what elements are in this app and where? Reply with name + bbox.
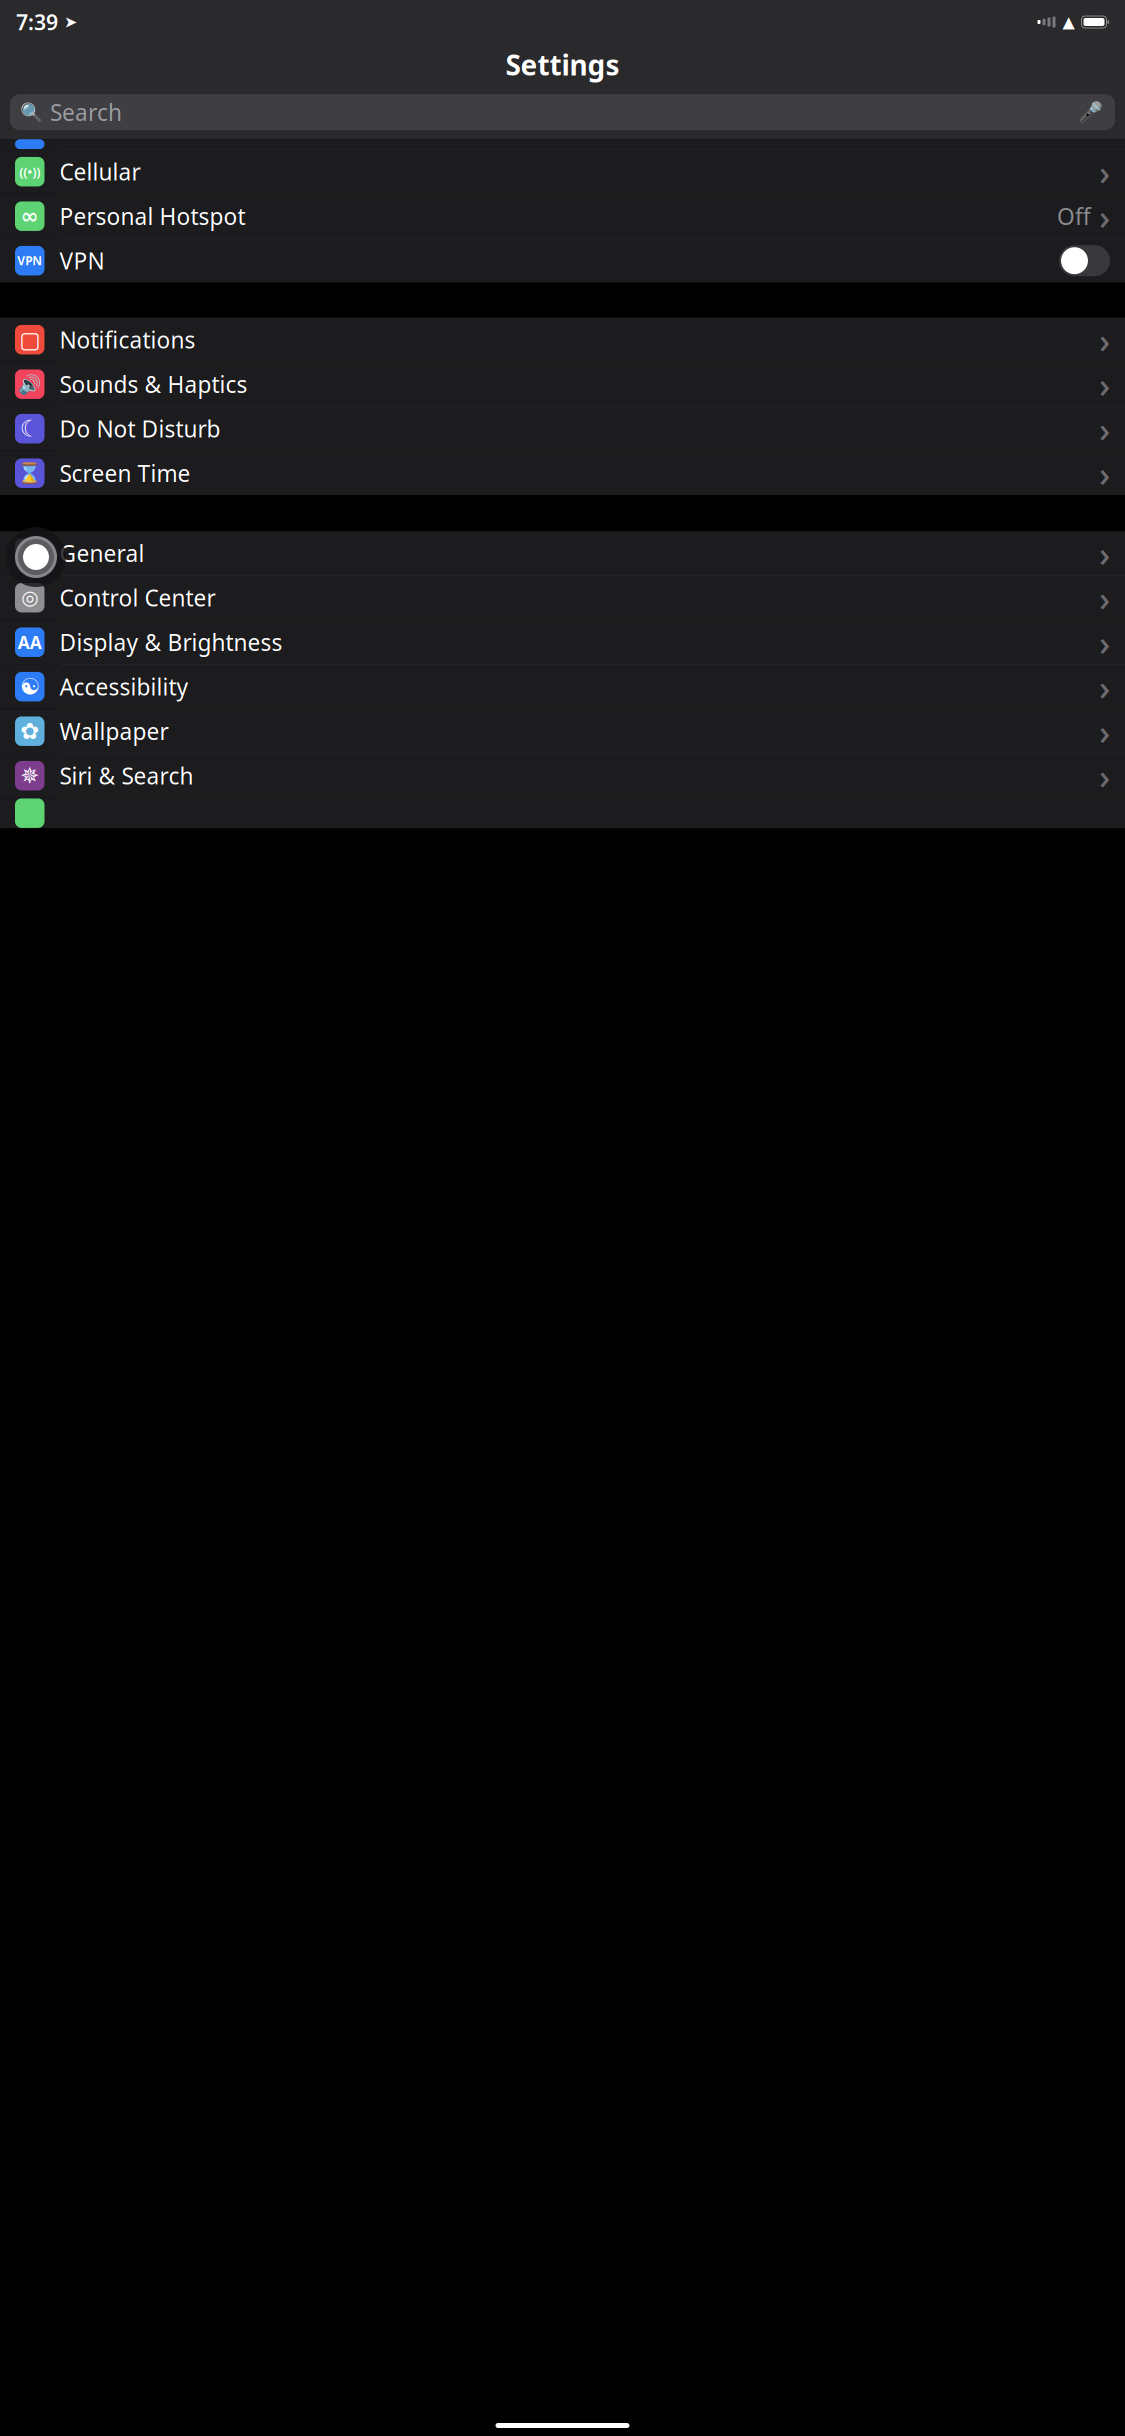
- button[interactable]: 🔍: [10, 94, 1115, 130]
- staticText: Sounds & Haptics: [59, 369, 247, 399]
- staticText: ⚙: [18, 539, 41, 568]
- staticText: ›: [1099, 317, 1110, 363]
- staticText: 🔊: [18, 373, 41, 395]
- button[interactable]: ☯: [0, 665, 1125, 709]
- staticText: Screen Time: [59, 458, 190, 488]
- button[interactable]: ((•)): [0, 150, 1125, 194]
- staticText: ⌛: [17, 462, 42, 485]
- button[interactable]: ∞: [0, 194, 1125, 238]
- staticText: Control Center: [59, 583, 215, 613]
- staticText: ›: [1099, 753, 1110, 799]
- staticText: Cellular: [59, 157, 140, 187]
- staticText: ((•)): [19, 163, 40, 180]
- staticText: Accessibility: [59, 672, 188, 702]
- button[interactable]: ⌛: [0, 451, 1125, 495]
- staticText: ▲: [1062, 13, 1074, 31]
- button[interactable]: ✵: [0, 754, 1125, 798]
- staticText: ›: [1099, 664, 1110, 710]
- staticText: ◎: [21, 586, 38, 609]
- staticText: ∞: [21, 204, 39, 228]
- staticText: Personal Hotspot: [59, 201, 245, 231]
- staticText: VPN: [59, 246, 104, 276]
- staticText: ›: [1099, 575, 1110, 621]
- staticText: ▢: [19, 327, 40, 352]
- staticText: 7:39: [16, 8, 58, 36]
- staticText: Notifications: [59, 325, 195, 355]
- button[interactable]: ◎: [0, 576, 1125, 620]
- button[interactable]: [0, 139, 1125, 149]
- staticText: Do Not Disturb: [59, 414, 220, 444]
- button[interactable]: ☾: [0, 407, 1125, 451]
- staticText: 🔍: [20, 101, 43, 123]
- staticText: ☯: [20, 674, 40, 699]
- staticText: General: [59, 538, 144, 568]
- staticText: VPN: [17, 253, 42, 269]
- staticText: ›: [1099, 361, 1110, 407]
- staticText: Siri & Search: [59, 761, 193, 791]
- staticText: ✵: [20, 763, 39, 788]
- staticText: ›: [1099, 450, 1110, 496]
- staticText: Display & Brightness: [59, 627, 282, 657]
- staticText: ✿: [20, 718, 39, 744]
- button[interactable]: 🔊: [0, 362, 1125, 406]
- staticText: AA: [18, 631, 42, 654]
- staticText: Wallpaper: [59, 716, 168, 746]
- button[interactable]: ✿: [0, 709, 1125, 753]
- staticText: Off: [1057, 201, 1091, 231]
- button[interactable]: AssistiveTouch: [6, 527, 66, 587]
- staticText: ›: [1099, 149, 1110, 195]
- staticText: ➤: [58, 13, 77, 31]
- staticText: ☾: [20, 416, 40, 441]
- staticText: ›: [1099, 708, 1110, 754]
- button[interactable]: ▢: [0, 318, 1125, 362]
- staticText: Settings: [505, 46, 619, 83]
- button[interactable]: AA: [0, 620, 1125, 664]
- staticText: ›: [1099, 193, 1110, 239]
- staticText: ›: [1099, 530, 1110, 576]
- button[interactable]: [0, 798, 1125, 828]
- button[interactable]: ⚙: [0, 531, 1125, 575]
- staticText: ›: [1099, 619, 1110, 665]
- button[interactable]: VPN: [0, 239, 1125, 283]
- staticText: Search: [50, 97, 122, 127]
- staticText: 🎤: [1078, 101, 1103, 124]
- staticText: ›: [1099, 406, 1110, 452]
